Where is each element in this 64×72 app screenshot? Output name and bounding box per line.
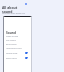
staticText: Fine tune every detail of it (2, 12, 25, 15)
staticText: Call volume (6, 39, 16, 41)
staticText: Notification sound (6, 47, 22, 49)
staticText: Sound (6, 31, 16, 35)
button[interactable]: Dolby Atmos (4, 56, 31, 59)
staticText: sound (2, 9, 13, 14)
staticText: All about (2, 5, 18, 10)
staticText: Vibrate mode (6, 52, 18, 54)
staticText: Ring volume (6, 43, 17, 45)
staticText: Dolby Atmos (6, 57, 17, 59)
staticText: Media volume (6, 35, 18, 37)
button[interactable]: Vibrate mode (4, 51, 31, 54)
